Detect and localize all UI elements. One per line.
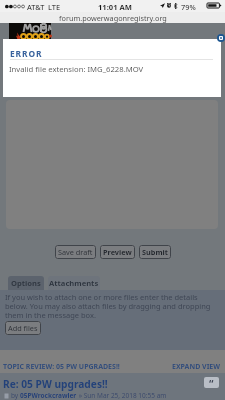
staticText: » Sun Mar 25, 2018 10:55 am: [77, 391, 167, 400]
staticText: Add files: [8, 323, 38, 333]
staticText: LTE: [48, 2, 61, 12]
staticText: “: [209, 377, 214, 388]
staticText: EXPAND VIEW: [172, 362, 221, 372]
staticText: by: [11, 391, 20, 400]
staticText: AT&T: [27, 2, 45, 12]
button[interactable]: TOPIC REVIEW: 05 PW UPGRADES!!: [3, 362, 120, 372]
staticText: Invalid file extension: IMG_6228.MOV: [9, 64, 144, 74]
button[interactable]: Close dialog: [217, 34, 225, 42]
staticText: Preview: [103, 247, 132, 257]
button[interactable]: Add files: [5, 321, 41, 335]
staticText: TOPIC REVIEW: 05 PW UPGRADES!!: [3, 362, 120, 372]
staticText: Re: 05 PW upgrades!!: [3, 377, 108, 391]
staticText: Attachments: [49, 278, 99, 288]
button[interactable]: Quote: [204, 377, 219, 388]
staticText: If you wish to attach one or more files …: [5, 292, 214, 320]
button[interactable]: Options: [8, 276, 44, 290]
staticText: Submit: [142, 247, 168, 257]
button[interactable]: Submit: [139, 245, 171, 259]
staticText: Save draft: [58, 247, 93, 257]
button[interactable]: EXPAND VIEW: [172, 362, 221, 372]
button[interactable]: Attachments: [48, 276, 100, 290]
staticText: 05PWrockcrawler: [20, 391, 77, 400]
button[interactable]: Preview: [100, 245, 135, 259]
staticText: forum.powerwagonregistry.org: [59, 13, 167, 23]
staticText: ERROR: [10, 48, 43, 59]
staticText: 11:01 AM: [98, 2, 132, 12]
button[interactable]: Save draft: [55, 245, 96, 259]
staticText: Options: [11, 278, 41, 288]
button[interactable]: Re: 05 PW upgrades!!: [3, 377, 108, 391]
staticText: 79%: [181, 2, 196, 12]
